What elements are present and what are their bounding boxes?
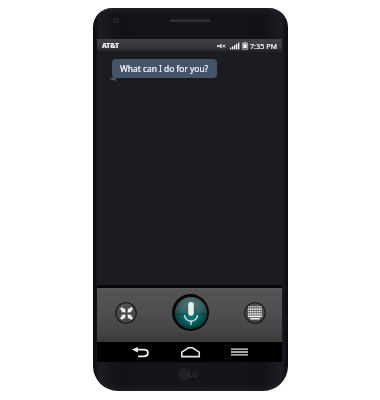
button[interactable]: Menu (220, 342, 258, 362)
button[interactable]: Collapse (115, 302, 137, 324)
staticText: AT&T (102, 41, 120, 51)
button[interactable]: Home (171, 342, 209, 362)
button[interactable]: What can I do for you? (112, 59, 217, 78)
staticText: What can I do for you? (120, 63, 209, 74)
staticText: LG (188, 368, 199, 379)
button[interactable]: Back (122, 342, 160, 362)
button[interactable]: Voice search (172, 294, 209, 331)
button[interactable]: Keyboard (244, 302, 266, 324)
staticText: 7:35 PM (250, 41, 277, 51)
